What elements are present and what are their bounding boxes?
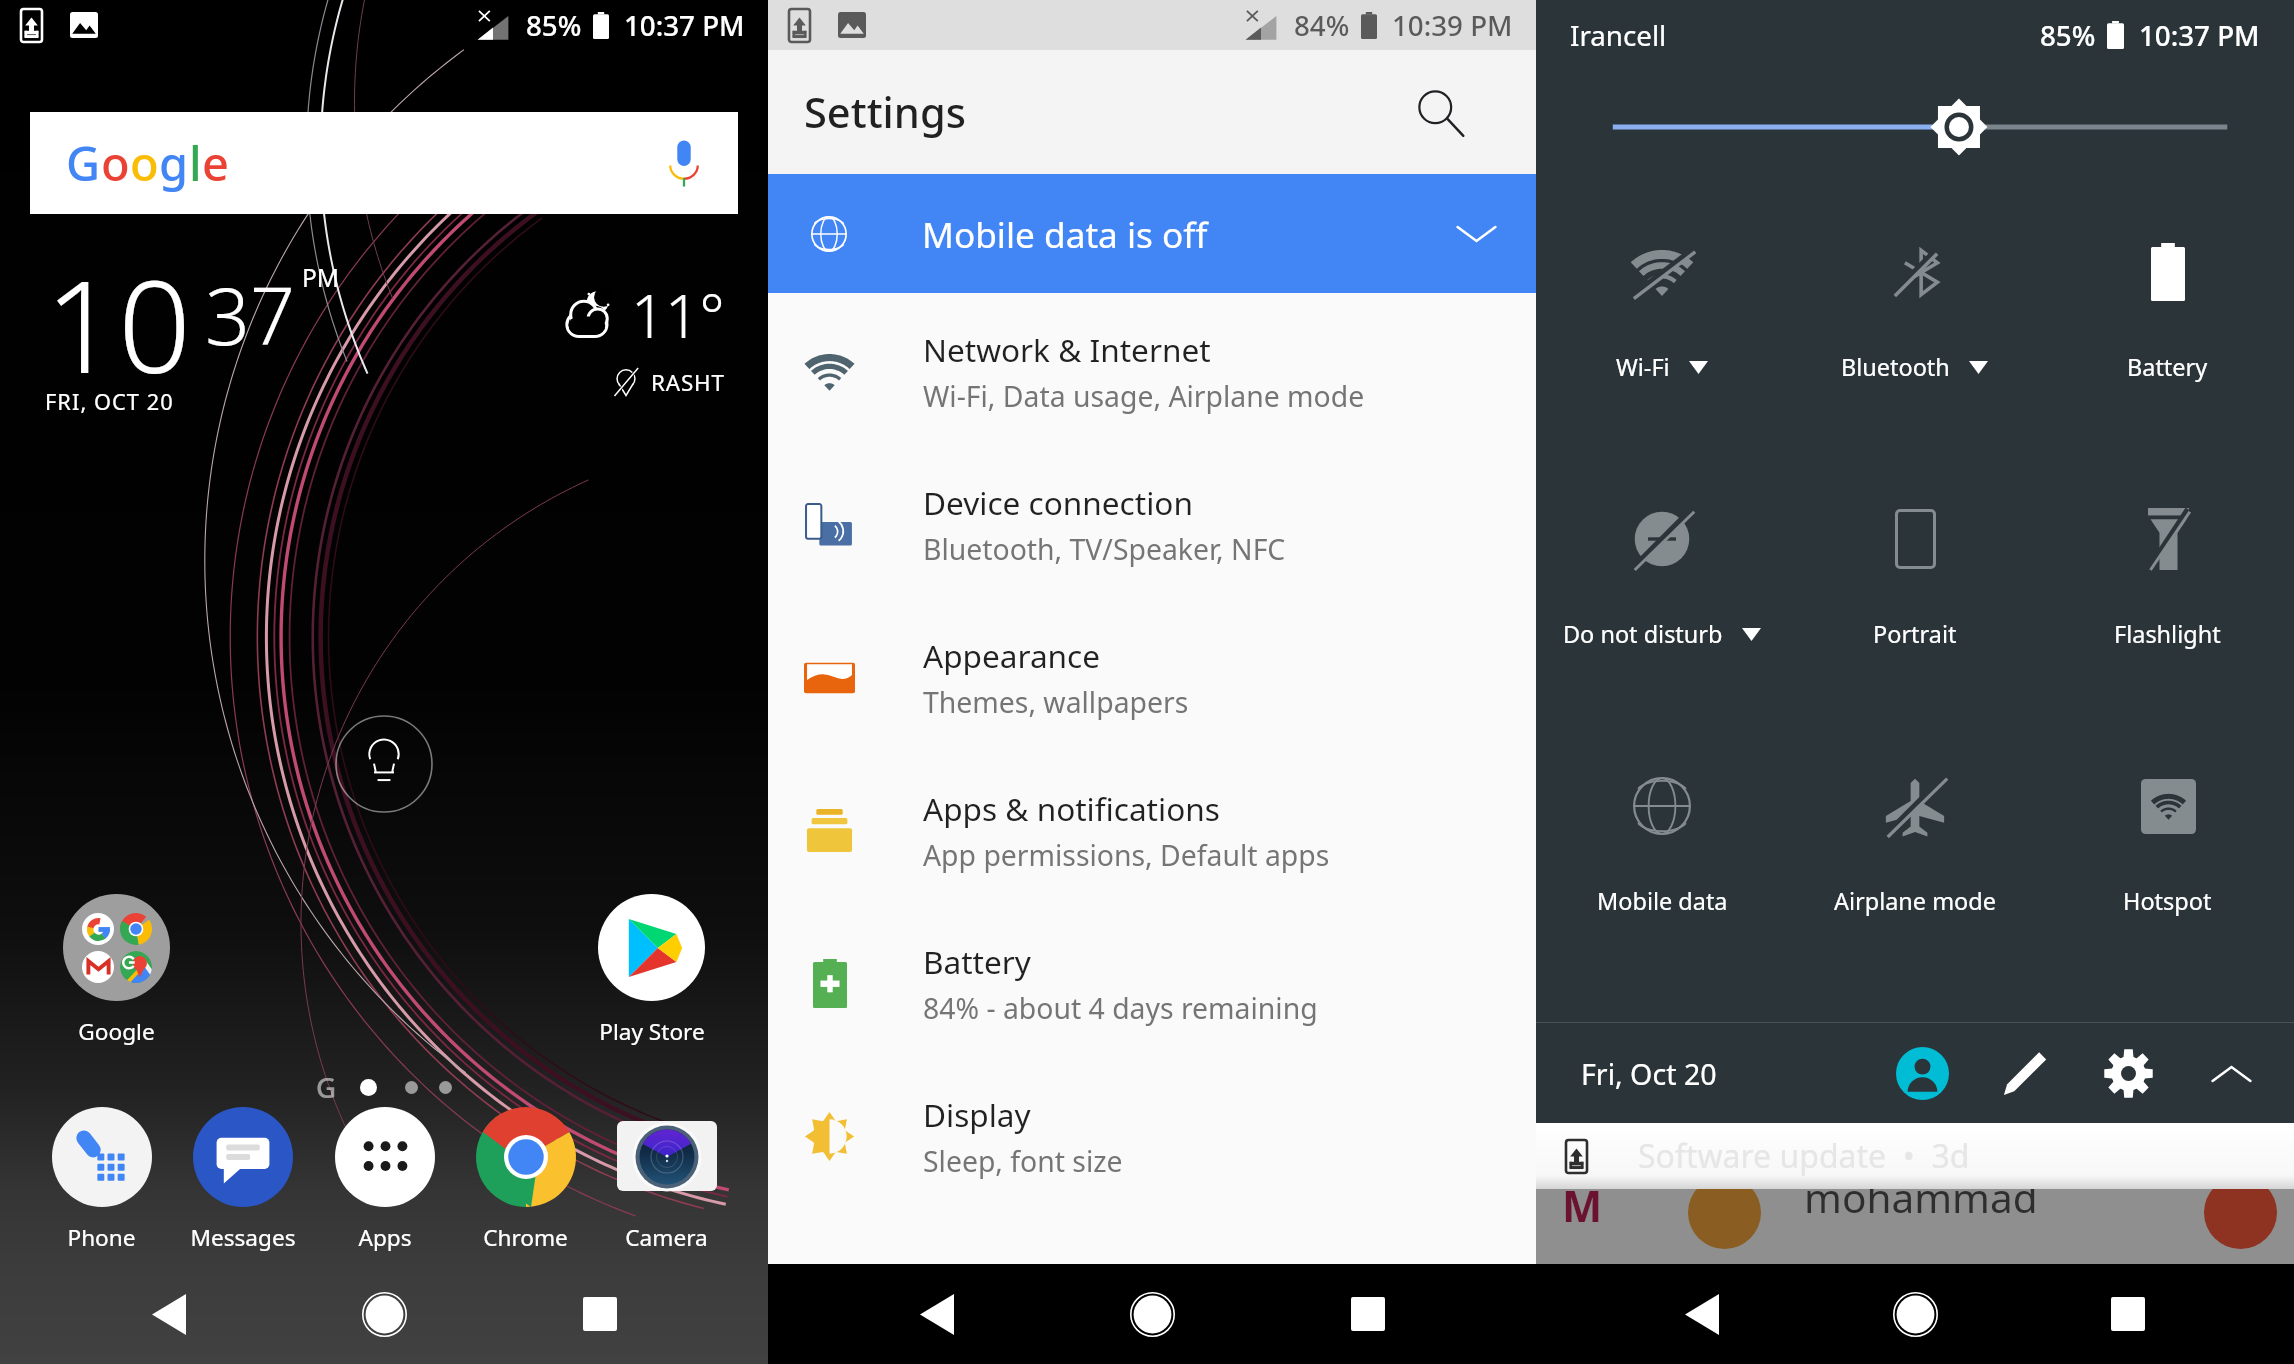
button[interactable]: Camera [597, 1107, 736, 1253]
button[interactable]: Google [47, 894, 186, 1047]
staticText: Fri, Oct 20 [1581, 1054, 1717, 1093]
button[interactable]: Hotspot [2041, 738, 2294, 1005]
button[interactable]: Collapse [2195, 1037, 2268, 1110]
staticText: Device connection [923, 481, 1193, 524]
button[interactable]: Battery [2041, 204, 2294, 471]
button[interactable]: Back [890, 1267, 984, 1361]
staticText: Phone [67, 1222, 136, 1253]
button[interactable]: Phone [32, 1107, 171, 1253]
button[interactable]: Back [122, 1267, 216, 1361]
staticText: Play Store [599, 1016, 705, 1047]
staticText: M [1562, 1176, 1603, 1234]
button[interactable]: Back [1655, 1267, 1749, 1361]
staticText: g [159, 131, 189, 195]
button[interactable]: Tips [335, 715, 433, 813]
staticText: mohammad [1804, 1170, 2038, 1225]
staticText: 10:37 PM [624, 6, 745, 44]
button[interactable]: Battery [768, 907, 1536, 1060]
staticText: Bluetooth, TV/Speaker, NFC [923, 530, 1286, 569]
staticText: G [66, 131, 101, 195]
staticText: Google [78, 1016, 155, 1047]
staticText: 84% - about 4 days remaining [923, 989, 1318, 1028]
staticText: 84% [1294, 6, 1350, 44]
button[interactable]: Airplane mode [1788, 738, 2041, 1005]
staticText: Mobile data [1597, 885, 1728, 917]
staticText: Chrome [483, 1222, 568, 1253]
staticText: Messages [190, 1222, 296, 1253]
button[interactable]: Mobile data [1536, 738, 1788, 1005]
staticText: Display [923, 1093, 1031, 1136]
staticText: RASHT [651, 367, 725, 398]
staticText: Network & Internet [923, 328, 1211, 371]
staticText: Appearance [923, 634, 1101, 677]
staticText: Irancell [1570, 16, 1667, 54]
staticText: App permissions, Default apps [923, 836, 1330, 875]
button[interactable]: Device connection [768, 448, 1536, 601]
staticText: 85% [2040, 16, 2096, 54]
staticText: FRI, OCT 20 [45, 387, 174, 417]
staticText: o [101, 131, 130, 195]
button[interactable]: G [30, 112, 738, 214]
staticText: Settings [804, 84, 966, 141]
staticText: Apps [358, 1222, 412, 1253]
button[interactable]: Network & Internet [768, 295, 1536, 448]
button[interactable]: Display [768, 1060, 1536, 1213]
staticText: 37 [205, 261, 296, 368]
staticText: Software update • 3d [1638, 1134, 1970, 1178]
staticText: e [202, 131, 229, 195]
button[interactable]: Edit [1989, 1037, 2062, 1110]
button[interactable]: Apps & notifications [768, 754, 1536, 907]
staticText: PM [302, 261, 340, 294]
staticText: Wi-Fi [1616, 351, 1670, 383]
button[interactable]: Wi-Fi [1536, 204, 1788, 471]
button[interactable]: User [1886, 1037, 1959, 1110]
staticText: Sleep, font size [923, 1142, 1123, 1181]
staticText: Hotspot [2123, 885, 2212, 917]
staticText: Wi-Fi, Data usage, Airplane mode [923, 377, 1365, 416]
staticText: o [130, 131, 159, 195]
button[interactable]: Portrait [1788, 471, 2041, 738]
staticText: Portrait [1873, 618, 1957, 650]
button[interactable]: Settings [2092, 1037, 2165, 1110]
staticText: 10:39 PM [1392, 6, 1513, 44]
button[interactable]: Search [1403, 76, 1476, 149]
staticText: l [189, 131, 202, 195]
staticText: Apps & notifications [923, 787, 1220, 830]
staticText: 10:37 PM [2139, 16, 2260, 54]
button[interactable]: Do not disturb [1536, 471, 1788, 738]
staticText: Battery [2127, 351, 2208, 383]
button[interactable]: Apps [315, 1107, 454, 1253]
staticText: Bluetooth [1841, 351, 1950, 383]
staticText: Mobile data is off [922, 210, 1208, 258]
button[interactable]: Brightness [1536, 70, 2294, 204]
button[interactable]: Recents [553, 1267, 647, 1361]
staticText: Airplane mode [1834, 885, 1996, 917]
button[interactable]: Recents [2081, 1267, 2175, 1361]
button[interactable]: Home [337, 1267, 431, 1361]
button[interactable]: Play Store [582, 894, 721, 1047]
staticText: Flashlight [2114, 618, 2221, 650]
button[interactable]: Recents [1321, 1267, 1415, 1361]
staticText: G [316, 1068, 337, 1106]
button[interactable]: Home [1868, 1267, 1962, 1361]
button[interactable]: Mobile data is off [768, 174, 1536, 293]
staticText: 10 [45, 236, 192, 398]
staticText: Battery [923, 940, 1031, 983]
staticText: 85% [526, 6, 582, 44]
staticText: Themes, wallpapers [923, 683, 1189, 722]
button[interactable]: Appearance [768, 601, 1536, 754]
button[interactable]: Flashlight [2041, 471, 2294, 738]
button[interactable]: Software update notification [1536, 1123, 2294, 1189]
button[interactable]: Chrome [456, 1107, 595, 1253]
button[interactable]: Messages [173, 1107, 312, 1253]
button[interactable]: Home [1105, 1267, 1199, 1361]
staticText: 11° [631, 274, 725, 355]
staticText: Camera [625, 1222, 708, 1253]
staticText: Do not disturb [1563, 618, 1723, 650]
button[interactable]: Bluetooth [1788, 204, 2041, 471]
